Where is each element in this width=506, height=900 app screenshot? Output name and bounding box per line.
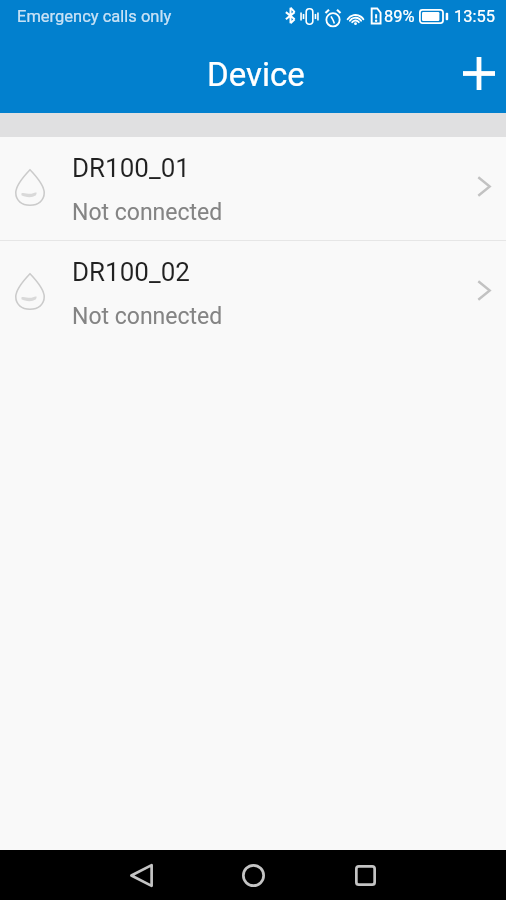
button[interactable]: Recents	[334, 850, 396, 900]
staticText: 13:55	[454, 7, 496, 26]
staticText: 89%	[384, 7, 415, 26]
staticText: Device	[207, 55, 305, 94]
staticText: Not connected	[72, 199, 223, 226]
staticText: DR100_02	[72, 257, 190, 287]
button[interactable]: Home	[222, 850, 284, 900]
button[interactable]: DR100_01	[0, 137, 506, 241]
staticText: Emergency calls only	[17, 7, 172, 26]
button[interactable]: Back	[110, 850, 172, 900]
staticText: Not connected	[72, 303, 223, 330]
button[interactable]: Add device	[450, 45, 506, 102]
button[interactable]: DR100_02	[0, 241, 506, 344]
staticText: DR100_01	[72, 153, 190, 183]
